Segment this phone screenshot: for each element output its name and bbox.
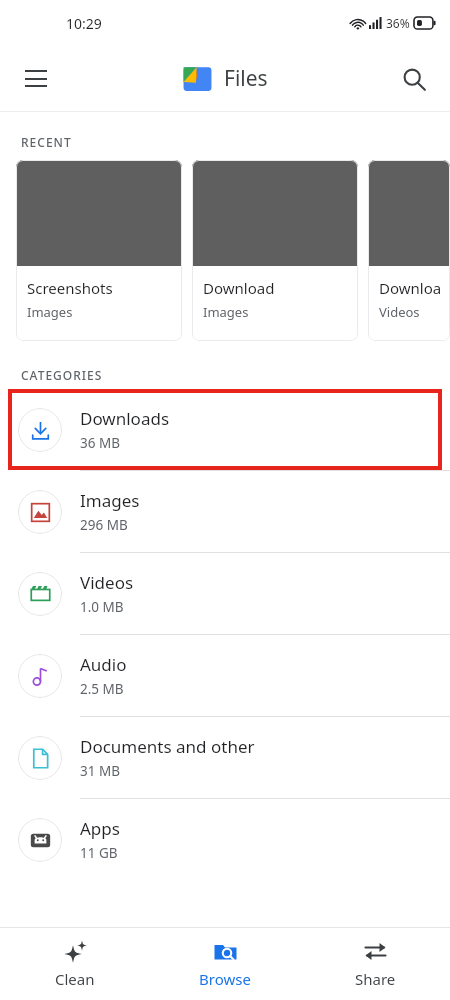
staticText: 36% — [386, 15, 410, 31]
button[interactable]: Apps — [0, 799, 450, 880]
button[interactable]: Browse — [150, 928, 300, 1000]
button[interactable]: Clean — [0, 928, 150, 1000]
button[interactable]: Share — [300, 928, 450, 1000]
staticText: Apps — [80, 817, 120, 840]
button[interactable]: Documents and other — [0, 717, 450, 798]
staticText: Share — [355, 969, 396, 989]
button[interactable]: Videos — [0, 553, 450, 634]
staticText: Videos — [379, 303, 420, 321]
button[interactable]: Downloads — [8, 389, 442, 470]
staticText: 296 MB — [80, 516, 128, 534]
staticText: CATEGORIES — [21, 367, 103, 383]
staticText: Audio — [80, 653, 127, 676]
button[interactable]: Download — [192, 160, 358, 341]
button[interactable]: Open navigation menu — [12, 55, 60, 103]
staticText: Browse — [199, 969, 251, 989]
staticText: Downloads — [80, 407, 170, 430]
staticText: Files — [224, 64, 268, 93]
staticText: 2.5 MB — [80, 680, 124, 698]
staticText: 11 GB — [80, 844, 118, 862]
staticText: 31 MB — [80, 762, 120, 780]
staticText: RECENT — [21, 134, 72, 150]
staticText: Images — [203, 303, 249, 321]
staticText: Clean — [55, 969, 95, 989]
staticText: Screenshots — [27, 278, 113, 298]
staticText: Download — [203, 278, 275, 298]
button[interactable]: Search — [390, 55, 438, 103]
staticText: 1.0 MB — [80, 598, 124, 616]
staticText: Images — [80, 489, 140, 512]
button[interactable]: Audio — [0, 635, 450, 716]
button[interactable]: Images — [0, 471, 450, 552]
staticText: Images — [27, 303, 73, 321]
staticText: Documents and other — [80, 735, 255, 758]
staticText: Download — [379, 278, 450, 298]
button[interactable]: Screenshots — [16, 160, 182, 341]
button[interactable]: Download — [368, 160, 450, 341]
staticText: 10:29 — [66, 14, 102, 33]
staticText: Videos — [80, 571, 134, 594]
staticText: 36 MB — [80, 434, 120, 452]
